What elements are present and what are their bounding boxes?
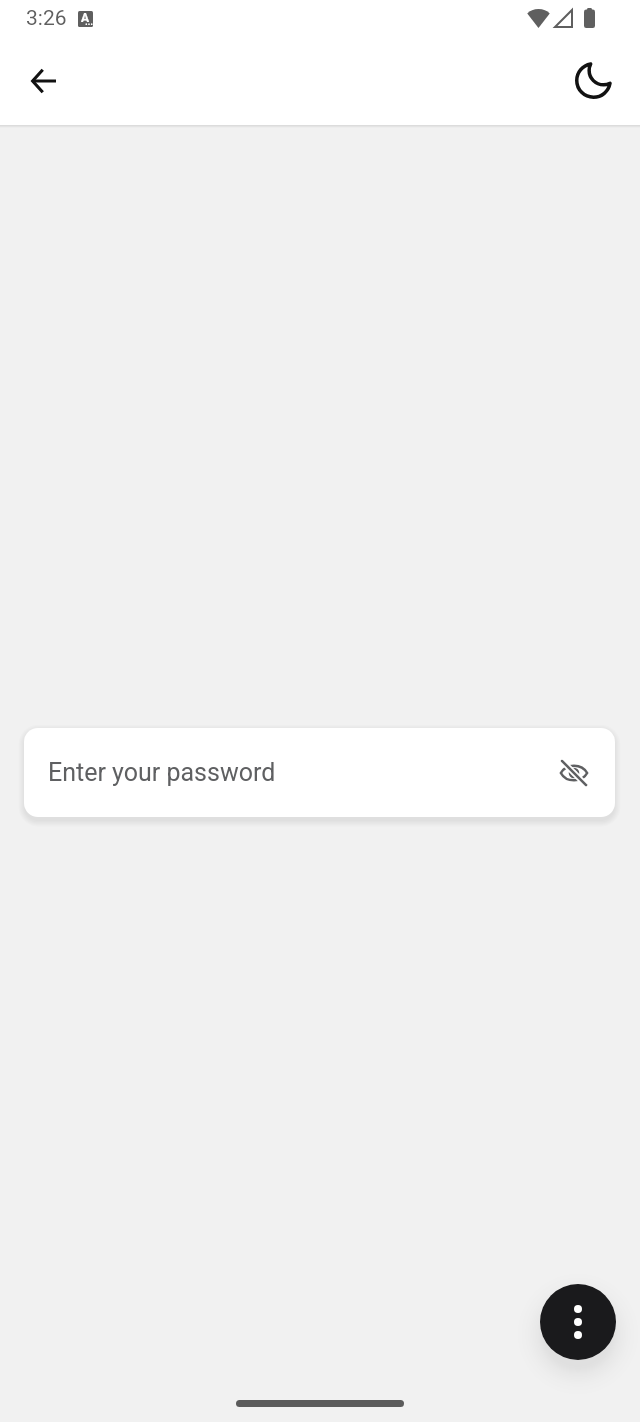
staticText: A [81, 11, 90, 25]
staticText: Enter your password [48, 758, 276, 787]
button[interactable]: Show password [550, 749, 598, 797]
staticText: 3:26 [26, 6, 67, 31]
button[interactable]: Enter your password [24, 728, 615, 817]
button[interactable]: More options [540, 1284, 616, 1360]
button[interactable]: Back [11, 48, 76, 113]
button[interactable]: Toggle dark mode [561, 48, 626, 113]
